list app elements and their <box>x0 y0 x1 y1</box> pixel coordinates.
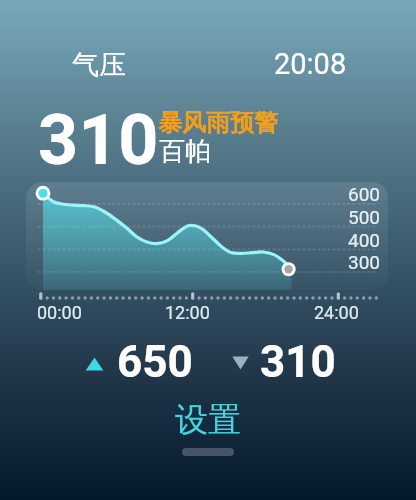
staticText: 400 <box>348 229 381 251</box>
staticText: 310 <box>260 336 336 388</box>
staticText: 暴风雨预警 <box>158 108 278 138</box>
button[interactable]: 设置 <box>151 393 265 447</box>
staticText: 24:00 <box>314 302 359 323</box>
staticText: 20:08 <box>274 47 347 81</box>
staticText: 12:00 <box>165 302 210 323</box>
staticText: 气压 <box>72 48 126 82</box>
staticText: 300 <box>348 251 381 273</box>
staticText: 500 <box>348 206 381 228</box>
staticText: 600 <box>348 183 381 205</box>
staticText: 设置 <box>175 399 241 441</box>
staticText: 00:00 <box>37 302 82 323</box>
staticText: 650 <box>117 336 193 388</box>
staticText: 310 <box>38 99 159 181</box>
button[interactable]: 650 <box>85 336 336 388</box>
staticText: 百帕 <box>159 135 211 168</box>
